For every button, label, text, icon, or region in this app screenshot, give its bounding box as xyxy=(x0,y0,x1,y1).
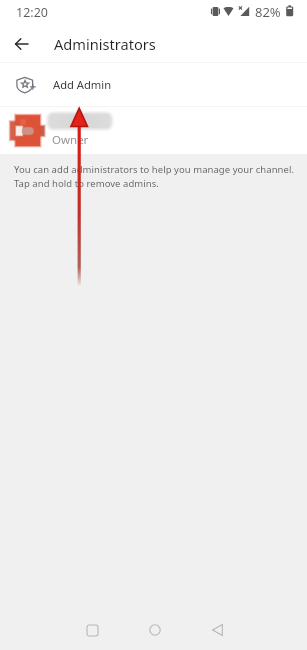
staticText: 82% xyxy=(255,3,281,21)
button[interactable]: Back xyxy=(5,28,37,60)
button[interactable]: Add Admin xyxy=(0,63,307,106)
button[interactable]: Recent apps xyxy=(75,613,109,647)
button[interactable]: Home xyxy=(138,613,172,647)
staticText: Add Admin xyxy=(53,77,112,92)
staticText: You can add administrators to help you m… xyxy=(14,163,303,190)
button[interactable]: Owner xyxy=(0,107,307,154)
staticText: Owner xyxy=(52,132,89,148)
staticText: Administrators xyxy=(54,34,156,54)
staticText: 12:20 xyxy=(16,4,48,21)
button[interactable]: Back xyxy=(200,613,234,647)
